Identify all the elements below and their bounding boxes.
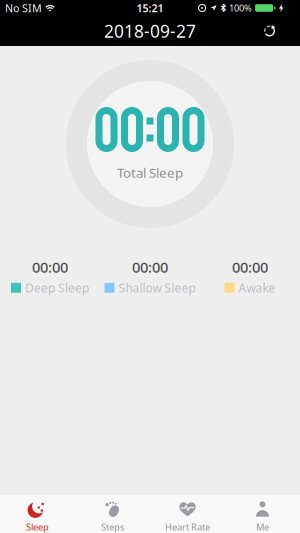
staticText: Shallow Sleep (118, 280, 195, 296)
button[interactable]: Heart Rate (150, 494, 225, 533)
staticText: Deep Sleep (25, 280, 89, 296)
staticText: 2018-09-27 (104, 19, 196, 42)
staticText: 00:00 (232, 257, 268, 277)
staticText: Heart Rate (165, 521, 210, 533)
staticText: Awake (238, 280, 275, 296)
staticText: Steps (101, 521, 124, 533)
staticText: Me (256, 521, 269, 533)
button[interactable] (255, 16, 285, 46)
button[interactable]: Sleep (0, 494, 75, 533)
button[interactable]: Steps (75, 494, 150, 533)
staticText: 15:21 (136, 1, 163, 15)
button[interactable]: Me (225, 494, 300, 533)
staticText: 100% (229, 2, 252, 14)
staticText: Sleep (26, 521, 49, 533)
staticText: 00:00 (132, 257, 168, 277)
staticText: 00:00 (32, 257, 68, 277)
staticText: Total Sleep (117, 164, 183, 181)
staticText: No SIM (5, 1, 42, 15)
